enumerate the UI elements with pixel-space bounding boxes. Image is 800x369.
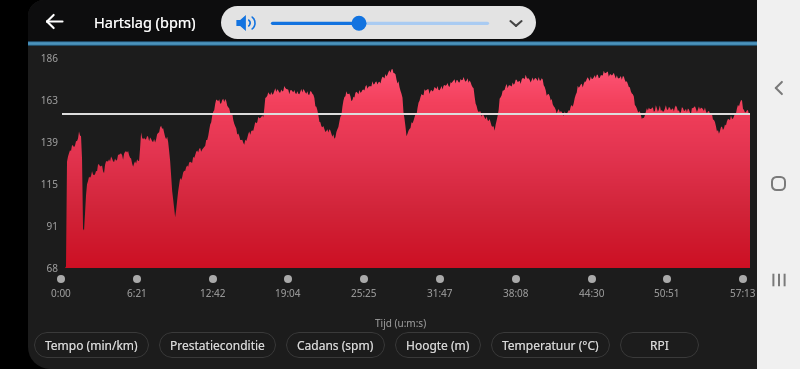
staticText: 44:30: [579, 286, 605, 300]
staticText: Temperatuur (°C): [502, 337, 599, 353]
staticText: 139: [40, 135, 58, 149]
button[interactable]: Cadans (spm): [286, 332, 385, 358]
staticText: 31:47: [427, 286, 453, 300]
staticText: RPI: [650, 337, 669, 353]
staticText: Prestatieconditie: [170, 337, 265, 353]
staticText: Tempo (min/km): [45, 337, 138, 353]
staticText: Tijd (u:m:s): [375, 316, 427, 330]
button[interactable]: Home: [757, 163, 800, 203]
button[interactable]: Back: [32, 0, 76, 43]
button[interactable]: Mute: [229, 6, 261, 39]
staticText: 38:08: [503, 286, 529, 300]
staticText: 91: [46, 219, 58, 233]
button[interactable]: Prestatieconditie: [159, 332, 276, 358]
staticText: 19:04: [275, 286, 301, 300]
staticText: 68: [46, 261, 58, 275]
button[interactable]: Volume: [221, 6, 536, 39]
staticText: 115: [40, 177, 58, 191]
staticText: 0:00: [51, 286, 71, 300]
button[interactable]: Back: [757, 68, 800, 108]
staticText: 6:21: [127, 286, 147, 300]
staticText: 57:13: [730, 286, 756, 300]
staticText: 50:51: [654, 286, 680, 300]
button[interactable]: Expand: [496, 6, 536, 39]
staticText: 12:42: [200, 286, 226, 300]
staticText: Hoogte (m): [406, 337, 470, 353]
button[interactable]: Temperatuur (°C): [491, 332, 610, 358]
staticText: 25:25: [351, 286, 377, 300]
button[interactable]: Hoogte (m): [395, 332, 481, 358]
staticText: Hartslag (bpm): [94, 12, 196, 32]
staticText: Cadans (spm): [297, 337, 374, 353]
staticText: 163: [40, 93, 58, 107]
staticText: 186: [40, 51, 58, 65]
button[interactable]: Tempo (min/km): [34, 332, 149, 358]
button[interactable]: Recent apps: [757, 260, 800, 300]
button[interactable]: RPI: [620, 332, 699, 358]
